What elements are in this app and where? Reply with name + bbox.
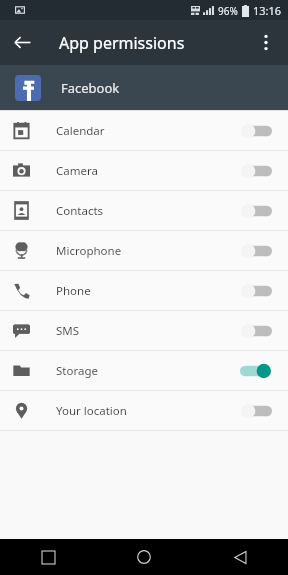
button[interactable]: Off [240,159,272,183]
staticText: Facebook [61,79,120,97]
staticText: Microphone [56,243,122,259]
button[interactable]: On [240,359,272,383]
staticText: Phone [56,283,91,299]
button[interactable]: Back [0,20,45,65]
button[interactable]: Facebook [0,65,288,110]
staticText: Calendar [56,123,105,139]
button[interactable]: Off [240,279,272,303]
button[interactable]: Off [240,399,272,423]
button[interactable]: Your location [0,391,288,430]
staticText: Your location [56,403,127,419]
staticText: Storage [56,363,98,379]
button[interactable]: Phone [0,271,288,310]
button[interactable]: Off [240,239,272,263]
button[interactable]: Camera [0,151,288,190]
button[interactable]: Storage [0,351,288,390]
staticText: App permissions [59,32,185,54]
button[interactable]: Off [240,199,272,223]
staticText: 96% [218,4,238,18]
button[interactable]: SMS [0,311,288,350]
staticText: 13:16 [253,3,282,18]
button[interactable]: Contacts [0,191,288,230]
button[interactable]: Recent apps [0,539,96,575]
staticText: Contacts [56,203,104,219]
button[interactable]: Off [240,119,272,143]
button[interactable]: More options [243,20,288,65]
staticText: Camera [56,163,98,179]
button[interactable]: Off [240,319,272,343]
button[interactable]: Microphone [0,231,288,270]
button[interactable]: Home [96,539,192,575]
button[interactable]: Calendar [0,111,288,150]
staticText: SMS [56,323,80,339]
button[interactable]: Back [192,539,288,575]
